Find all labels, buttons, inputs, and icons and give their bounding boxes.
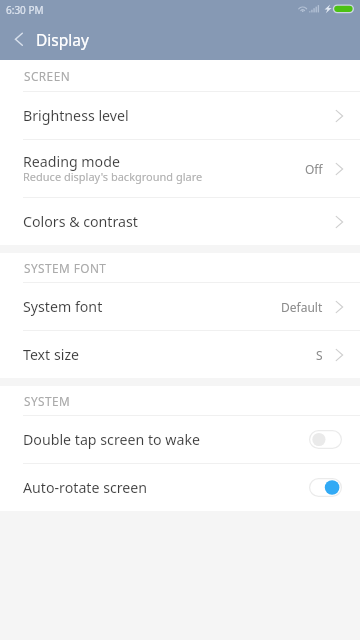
staticText: System font bbox=[23, 297, 103, 316]
staticText: Colors & contrast bbox=[23, 212, 138, 231]
staticText: Text size bbox=[23, 345, 80, 364]
staticText: Reduce display's background glare bbox=[23, 169, 203, 184]
button[interactable]: System font bbox=[0, 283, 360, 330]
staticText: 6:30 PM bbox=[6, 3, 44, 17]
staticText: Display bbox=[36, 29, 89, 50]
staticText: SCREEN bbox=[24, 68, 71, 84]
staticText: Auto-rotate screen bbox=[23, 478, 309, 497]
staticText: Brightness level bbox=[23, 106, 129, 125]
staticText: SYSTEM bbox=[24, 393, 71, 409]
staticText: Double tap screen to wake bbox=[23, 430, 309, 449]
staticText: S bbox=[316, 347, 323, 363]
button[interactable]: Back bbox=[0, 24, 32, 60]
button[interactable]: Auto-rotate screen bbox=[0, 464, 360, 511]
staticText: Reading mode bbox=[23, 152, 120, 171]
staticText: Default bbox=[281, 299, 323, 315]
button[interactable]: Brightness level bbox=[0, 92, 360, 139]
button[interactable]: Double tap screen to wake bbox=[0, 416, 360, 463]
button[interactable]: Reading mode bbox=[0, 140, 360, 197]
button[interactable]: Colors & contrast bbox=[0, 198, 360, 245]
button[interactable]: Text size bbox=[0, 331, 360, 378]
staticText: Off bbox=[305, 161, 323, 177]
staticText: SYSTEM FONT bbox=[24, 260, 107, 276]
